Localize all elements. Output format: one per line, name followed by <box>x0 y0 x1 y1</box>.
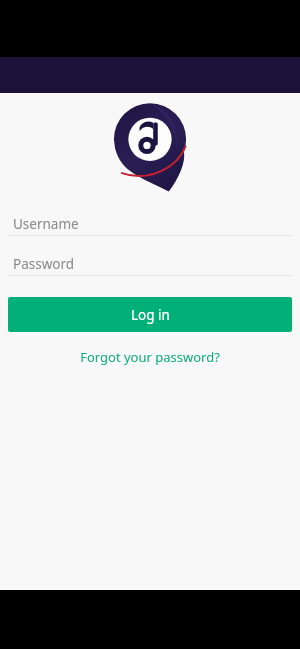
staticText: Password <box>13 255 75 273</box>
button[interactable]: Log in <box>8 297 292 332</box>
staticText: Log in <box>131 306 170 324</box>
button[interactable]: Forgot your password? <box>0 345 300 369</box>
staticText: Username <box>13 215 79 233</box>
button[interactable]: Username <box>8 213 292 236</box>
button[interactable]: Password <box>8 253 292 276</box>
other: App logo <box>112 100 188 192</box>
staticText: Forgot your password? <box>80 348 220 366</box>
